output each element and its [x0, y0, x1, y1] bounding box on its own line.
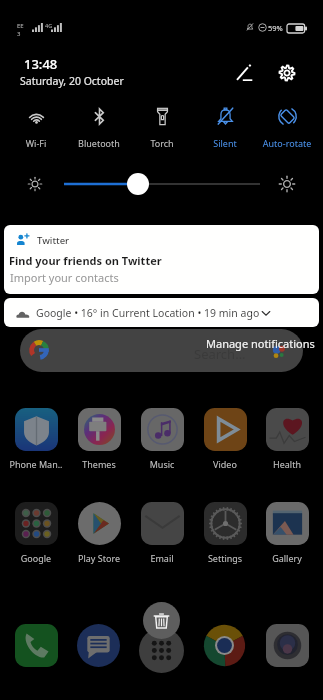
staticText: 59% [268, 23, 283, 33]
staticText: Bluetooth [68, 137, 130, 149]
staticText: Email [131, 552, 193, 564]
button[interactable]: Chrome [203, 624, 246, 667]
button[interactable]: Play Store [68, 499, 130, 565]
button[interactable]: Wi-Fi [5, 104, 67, 150]
button[interactable]: Music [131, 405, 193, 471]
button[interactable]: Remove [143, 602, 180, 639]
staticText: Wi-Fi [5, 137, 67, 149]
staticText: Themes [68, 458, 130, 470]
button[interactable]: Phone Man.. [5, 405, 67, 471]
staticText: Silent [194, 137, 256, 149]
button[interactable]: Health [256, 405, 318, 471]
button[interactable]: Edit [231, 59, 258, 86]
staticText: Settings [194, 552, 256, 564]
staticText: Twitter [37, 234, 70, 247]
staticText: Saturday, 20 October [20, 74, 124, 88]
button[interactable]: Video [194, 405, 256, 471]
button[interactable]: Twitter [4, 225, 319, 294]
staticText: Import your contacts [10, 270, 119, 285]
button[interactable] [50, 172, 276, 196]
staticText: Phone Man.. [5, 458, 67, 470]
button[interactable]: Manage notifications [200, 333, 321, 354]
button[interactable]: Google • 16° in Current Location • 19 mi… [4, 298, 319, 327]
staticText: Health [256, 458, 318, 470]
staticText: Torch [131, 137, 193, 149]
staticText: EE [17, 22, 24, 30]
button[interactable]: Messages [77, 624, 120, 667]
button[interactable]: Search... [20, 329, 303, 372]
button[interactable]: Themes [68, 405, 130, 471]
staticText: 13:48 [24, 55, 58, 73]
button[interactable]: Settings [194, 499, 256, 565]
button[interactable]: Gallery [256, 499, 318, 565]
button[interactable]: Torch [131, 104, 193, 150]
button[interactable]: Phone [15, 624, 58, 667]
staticText: Gallery [256, 552, 318, 564]
button[interactable]: Google [5, 499, 67, 565]
staticText: 4G [45, 22, 53, 29]
staticText: Google [5, 552, 67, 564]
staticText: Search... [194, 345, 246, 363]
staticText: Music [131, 458, 193, 470]
button[interactable]: Settings [273, 59, 301, 87]
staticText: Find your friends on Twitter [9, 253, 162, 268]
button[interactable]: Silent [194, 104, 256, 150]
staticText: Manage notifications [206, 336, 315, 351]
button[interactable]: App drawer [139, 628, 184, 673]
button[interactable]: Email [131, 499, 193, 565]
staticText: Auto-rotate [256, 137, 318, 149]
staticText: Video [194, 458, 256, 470]
button[interactable]: Auto-rotate [256, 104, 318, 150]
staticText: Google • 16° in Current Location • 19 mi… [36, 306, 260, 320]
staticText: Play Store [68, 552, 130, 564]
staticText: 3 [17, 30, 21, 38]
button[interactable]: Camera [266, 624, 309, 667]
button[interactable]: Bluetooth [68, 104, 130, 150]
